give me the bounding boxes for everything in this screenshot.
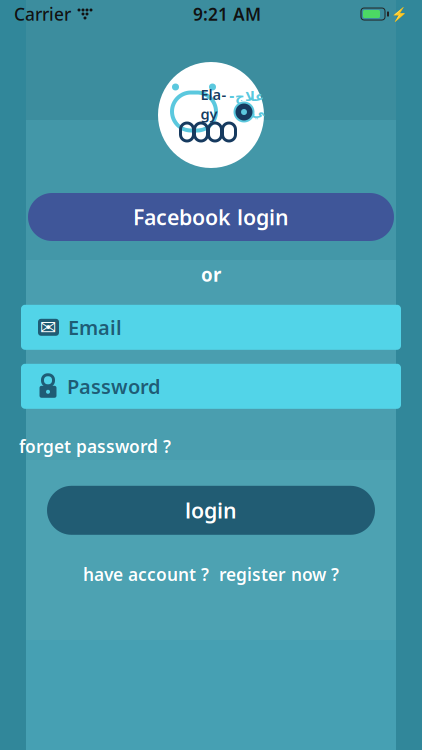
staticText: علاجي — [228, 89, 263, 119]
button[interactable]: have account ? register now ? — [75, 557, 347, 592]
staticText: Elagy — [200, 84, 226, 123]
staticText: have account ? register now ? — [83, 563, 339, 586]
staticText: Password — [67, 373, 161, 400]
staticText: or — [201, 262, 221, 287]
staticText: ✉ — [40, 316, 57, 339]
staticText: 9:21 AM — [193, 2, 261, 25]
staticText: login — [185, 496, 237, 524]
staticText: Facebook login — [133, 203, 289, 231]
staticText: Email — [68, 314, 122, 341]
button[interactable]: Password — [21, 364, 401, 409]
staticText: ⚡ — [391, 6, 408, 22]
staticText: forget password ? — [19, 435, 171, 458]
staticText: Carrier — [14, 2, 71, 25]
button[interactable]: login — [47, 486, 375, 535]
button[interactable]: ✉ — [21, 305, 401, 350]
button[interactable]: forget password ? — [17, 429, 173, 464]
button[interactable]: Facebook login — [28, 193, 394, 241]
